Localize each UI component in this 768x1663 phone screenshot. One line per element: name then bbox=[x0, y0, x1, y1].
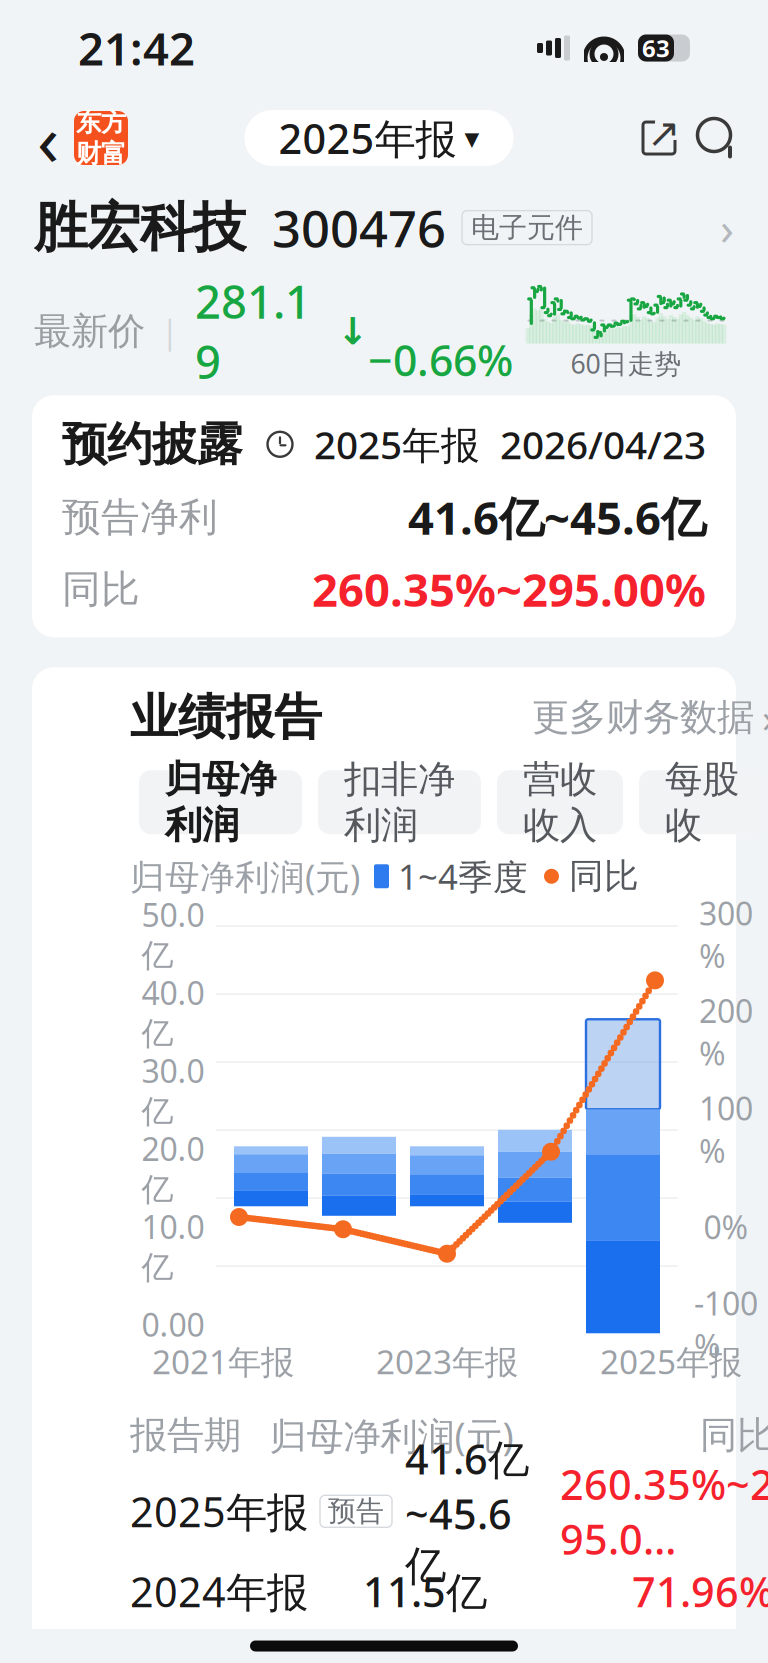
staticText: 11.5亿 bbox=[363, 1564, 487, 1619]
staticText: 东方 bbox=[76, 107, 126, 138]
button[interactable]: 营收收入 bbox=[497, 770, 623, 834]
staticText: 预告净利 bbox=[62, 493, 218, 541]
staticText: 281.19 bbox=[195, 271, 311, 391]
button[interactable]: 2024年报 bbox=[130, 1551, 768, 1631]
staticText: › bbox=[720, 197, 734, 258]
staticText: ↗ bbox=[647, 110, 681, 156]
staticText: 41.6亿~45.6亿 bbox=[405, 1431, 529, 1591]
staticText: ↓ bbox=[311, 310, 368, 352]
staticText: 1~4季度 bbox=[389, 853, 528, 899]
staticText: 300476 bbox=[246, 194, 446, 261]
staticText: 报告期 bbox=[130, 1412, 241, 1458]
button[interactable]: 胜宏科技 bbox=[0, 180, 768, 379]
staticText: 6.71亿 bbox=[363, 1644, 487, 1663]
staticText: 2025年报 bbox=[600, 1339, 742, 1383]
staticText: 20.0亿 bbox=[141, 1127, 204, 1209]
staticText: 营收收入 bbox=[523, 756, 597, 848]
staticText: 预告 bbox=[328, 1494, 384, 1528]
button[interactable]: 东方财富 bbox=[74, 111, 128, 165]
button[interactable]: 分享 bbox=[630, 107, 688, 169]
staticText: 21:42 bbox=[78, 18, 195, 78]
staticText: ▾ bbox=[464, 121, 479, 155]
staticText: 同比 bbox=[559, 855, 639, 898]
staticText: 260.35%~295.0… bbox=[560, 1456, 768, 1566]
button[interactable]: 2025年报 bbox=[130, 1471, 768, 1551]
staticText: 归母净利润 bbox=[165, 756, 276, 848]
staticText: 业绩报告 bbox=[130, 688, 322, 747]
staticText: 预约披露 bbox=[62, 416, 242, 472]
staticText: 财富 bbox=[76, 138, 126, 169]
staticText: 40.0亿 bbox=[141, 971, 204, 1053]
staticText: | bbox=[161, 310, 179, 352]
staticText: 41.6亿~45.6亿 bbox=[408, 487, 706, 547]
staticText: 63 bbox=[642, 32, 670, 64]
button[interactable]: 返回 bbox=[22, 107, 74, 169]
button[interactable]: 2025年报 bbox=[244, 110, 513, 166]
button[interactable]: 2023年报 bbox=[130, 1631, 768, 1663]
staticText: 归母净利润(元) bbox=[130, 853, 360, 899]
staticText: −0.66% bbox=[368, 275, 513, 388]
staticText: 2023年报 bbox=[130, 1644, 308, 1663]
button[interactable]: 更多财务数据 bbox=[532, 691, 768, 744]
staticText: 更多财务数据 bbox=[532, 694, 754, 740]
staticText: 2025年报 bbox=[278, 111, 456, 165]
staticText: 10.0亿 bbox=[141, 1205, 204, 1287]
staticText: 2024年报 bbox=[130, 1564, 308, 1619]
staticText: 71.96% bbox=[632, 1564, 768, 1619]
staticText: 电子元件 bbox=[471, 210, 583, 245]
staticText: 2021年报 bbox=[152, 1339, 294, 1383]
staticText: 2025年报 2026/04/23 bbox=[294, 419, 706, 470]
staticText: › bbox=[762, 691, 768, 744]
staticText: 最新价 bbox=[34, 308, 145, 354]
staticText: 0% bbox=[703, 1205, 748, 1248]
staticText: -100% bbox=[694, 1282, 758, 1367]
staticText: 60日走势 bbox=[570, 346, 681, 381]
staticText: 300% bbox=[699, 892, 753, 977]
staticText: 2025年报 bbox=[130, 1484, 308, 1539]
button[interactable]: 搜索 bbox=[688, 107, 746, 169]
staticText: 每股收 bbox=[665, 756, 739, 848]
staticText: 归母净利润(元) bbox=[269, 1410, 513, 1460]
staticText: 0.00 bbox=[141, 1303, 204, 1345]
staticText: 50.0亿 bbox=[141, 893, 204, 975]
staticText: 30.0亿 bbox=[141, 1049, 204, 1131]
staticText: 同比 bbox=[700, 1412, 768, 1458]
button[interactable]: 每股收 bbox=[639, 770, 765, 834]
staticText: ‹ bbox=[37, 90, 59, 186]
staticText: 100% bbox=[699, 1087, 753, 1172]
staticText: 260.35%~295.00% bbox=[312, 559, 706, 619]
staticText: 2023年报 bbox=[376, 1339, 518, 1383]
button[interactable]: 归母净利润 bbox=[139, 770, 302, 834]
button[interactable]: 扣非净利润 bbox=[318, 770, 481, 834]
staticText: 200% bbox=[699, 989, 753, 1074]
staticText: 同比 bbox=[62, 565, 140, 613]
staticText: 胜宏科技 bbox=[34, 195, 246, 260]
staticText: 扣非净利润 bbox=[344, 756, 455, 848]
